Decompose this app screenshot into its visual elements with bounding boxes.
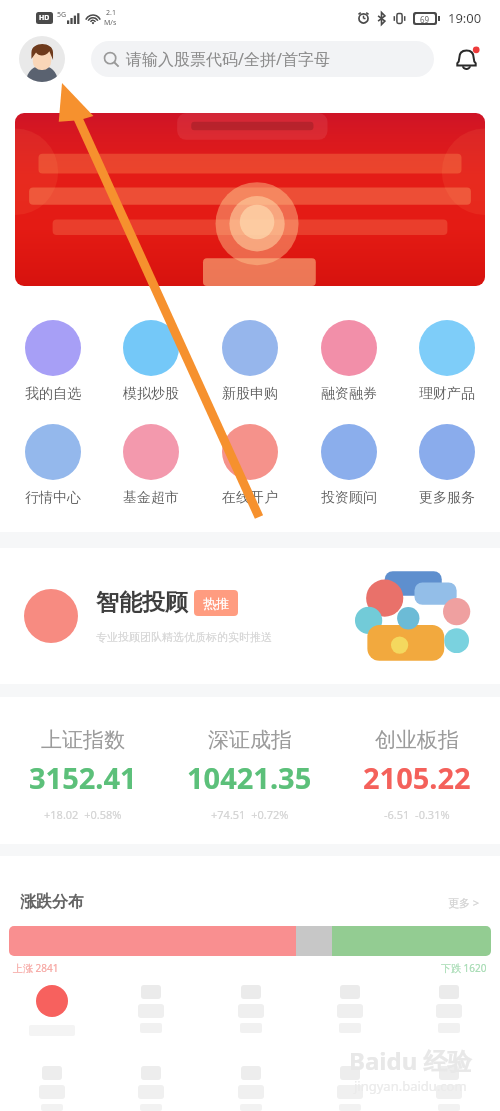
staticText: 5G: [57, 10, 67, 20]
button[interactable]: [203, 985, 298, 1033]
button[interactable]: [4, 985, 99, 1036]
staticText: 智能投顾: [96, 588, 188, 617]
button[interactable]: [103, 1066, 198, 1111]
button[interactable]: Notifications: [450, 43, 482, 75]
staticText: 在线开户: [222, 489, 278, 507]
button[interactable]: [15, 113, 485, 286]
staticText: 融资融券: [321, 385, 377, 403]
button[interactable]: 理财产品: [401, 320, 493, 403]
button[interactable]: [103, 985, 198, 1033]
staticText: 69: [420, 14, 430, 23]
staticText: HD: [39, 13, 50, 23]
staticText: 基金超市: [123, 489, 179, 507]
staticText: +74.51 +0.72%: [211, 807, 289, 822]
button[interactable]: [4, 1066, 99, 1111]
staticText: -6.51 -0.31%: [384, 807, 450, 822]
staticText: Baidu 经验: [349, 1044, 472, 1077]
button[interactable]: Profile: [19, 36, 65, 82]
button[interactable]: 创业板指: [333, 697, 500, 844]
staticText: 上证指数: [41, 727, 125, 753]
staticText: 更多 >: [448, 895, 480, 910]
staticText: 新股申购: [222, 385, 278, 403]
staticText: jingyan.baidu.com: [354, 1077, 467, 1095]
button[interactable]: [203, 1066, 298, 1111]
staticText: 理财产品: [419, 385, 475, 403]
staticText: 模拟炒股: [123, 385, 179, 403]
button[interactable]: 融资融券: [303, 320, 395, 403]
staticText: 专业投顾团队精选优质标的实时推送: [96, 630, 272, 644]
staticText: 热推: [203, 595, 229, 611]
staticText: 创业板指: [375, 727, 459, 753]
staticText: 下跌 1620: [441, 961, 487, 975]
button[interactable]: 在线开户: [204, 424, 296, 507]
button[interactable]: 新股申购: [204, 320, 296, 403]
staticText: 19:00: [448, 9, 482, 27]
staticText: 更多服务: [419, 489, 475, 507]
staticText: 上涨 2841: [13, 961, 59, 975]
staticText: +18.02 +0.58%: [44, 807, 122, 822]
button[interactable]: 上证指数: [0, 697, 166, 844]
staticText: 2.1: [106, 8, 116, 18]
staticText: 行情中心: [25, 489, 81, 507]
button[interactable]: 行情中心: [7, 424, 99, 507]
staticText: 请输入股票代码/全拼/首字母: [126, 48, 330, 70]
button[interactable]: [401, 985, 496, 1033]
staticText: 涨跌分布: [20, 892, 84, 912]
button[interactable]: 深证成指: [166, 697, 333, 844]
button[interactable]: 我的自选: [7, 320, 99, 403]
staticText: 我的自选: [25, 385, 81, 403]
staticText: 投资顾问: [321, 489, 377, 507]
button[interactable]: 模拟炒股: [105, 320, 197, 403]
button[interactable]: [302, 985, 397, 1033]
button[interactable]: 基金超市: [105, 424, 197, 507]
staticText: 3152.41: [29, 758, 137, 797]
button[interactable]: 更多服务: [401, 424, 493, 507]
staticText: 10421.35: [187, 758, 312, 797]
button[interactable]: 智能投顾: [0, 548, 500, 684]
button[interactable]: [302, 1066, 397, 1111]
button[interactable]: [401, 1066, 496, 1111]
button[interactable]: 投资顾问: [303, 424, 395, 507]
staticText: 2105.22: [363, 758, 471, 797]
staticText: M/s: [104, 18, 117, 28]
button[interactable]: 请输入股票代码/全拼/首字母: [91, 41, 434, 77]
staticText: 深证成指: [208, 727, 292, 753]
